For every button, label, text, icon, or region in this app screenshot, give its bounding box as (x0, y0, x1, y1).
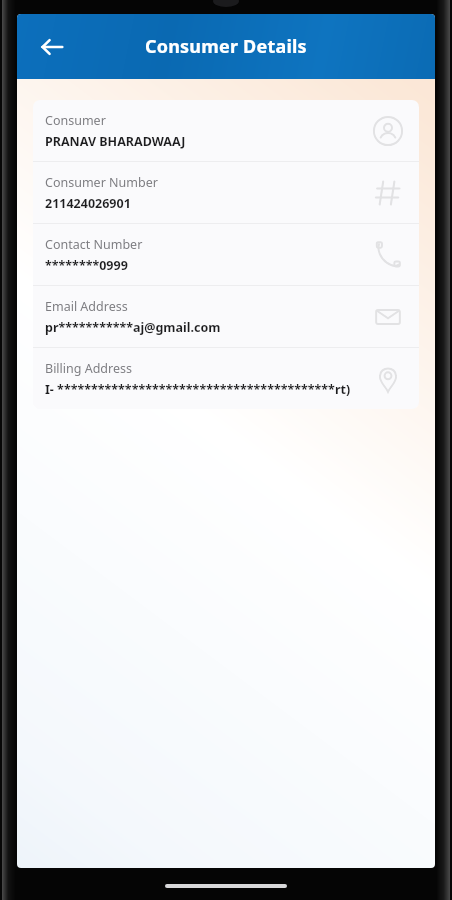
staticText: Consumer Number (45, 174, 158, 191)
button[interactable]: Consumer (33, 100, 419, 161)
staticText: Consumer (45, 112, 106, 129)
staticText: Contact Number (45, 236, 143, 253)
staticText: ********0999 (45, 257, 128, 274)
staticText: Email Address (45, 298, 128, 315)
button[interactable]: Back (30, 25, 74, 69)
staticText: Consumer Details (145, 34, 307, 59)
staticText: 211424026901 (45, 195, 131, 212)
button[interactable]: Email Address (33, 286, 419, 347)
staticText: PRANAV BHARADWAAJ (45, 133, 186, 150)
button[interactable]: Billing Address (33, 348, 419, 409)
button[interactable]: Contact Number (33, 224, 419, 285)
staticText: pr***********aj@gmail.com (45, 319, 221, 336)
button[interactable]: Consumer Number (33, 162, 419, 223)
staticText: I- *************************************… (45, 381, 351, 398)
staticText: Billing Address (45, 360, 132, 377)
